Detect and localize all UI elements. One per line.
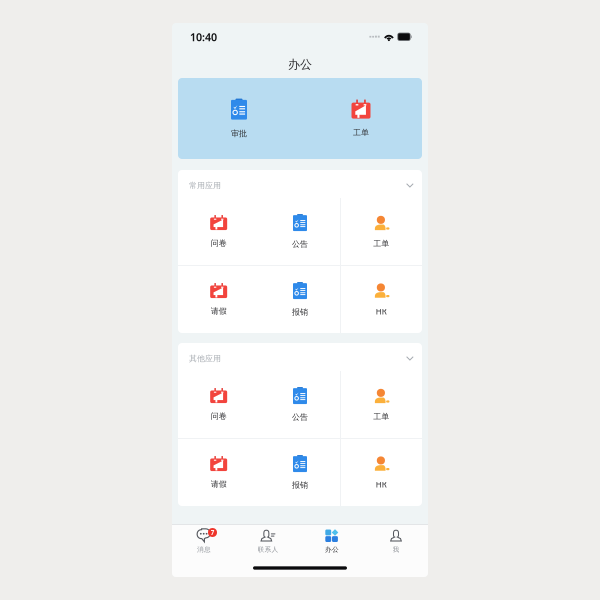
button[interactable]: 请假 xyxy=(178,265,259,333)
staticText: 工单 xyxy=(373,239,389,248)
staticText: 消息 xyxy=(197,545,211,554)
staticText: 工单 xyxy=(373,412,389,421)
button[interactable]: 常用应用 xyxy=(178,170,422,198)
staticText: 7 xyxy=(210,528,214,537)
staticText: 报销 xyxy=(292,480,308,490)
staticText: 我 xyxy=(392,545,399,554)
button[interactable]: 报销 xyxy=(259,438,341,506)
button[interactable]: 办公 xyxy=(300,525,364,559)
button[interactable]: HR xyxy=(341,265,422,333)
button[interactable]: 报销 xyxy=(259,265,341,333)
staticText: HR xyxy=(376,479,387,490)
staticText: 请假 xyxy=(211,479,227,489)
staticText: 办公 xyxy=(288,57,312,72)
staticText: 常用应用 xyxy=(189,181,221,190)
staticText: 公告 xyxy=(292,412,308,422)
button[interactable]: HR xyxy=(341,438,422,506)
button[interactable]: 公告 xyxy=(259,370,341,438)
staticText: 10:40 xyxy=(190,30,217,44)
staticText: 请假 xyxy=(211,306,227,316)
staticText: 公告 xyxy=(292,239,308,249)
button[interactable]: 工单 xyxy=(300,78,422,159)
button[interactable]: 工单 xyxy=(341,197,422,265)
button[interactable]: 我 xyxy=(364,525,428,559)
staticText: 联系人 xyxy=(257,545,278,554)
button[interactable]: 其他应用 xyxy=(178,343,422,371)
staticText: 审批 xyxy=(231,129,247,138)
button[interactable]: 工单 xyxy=(341,370,422,438)
staticText: 报销 xyxy=(292,307,308,317)
button[interactable]: 公告 xyxy=(259,197,341,265)
staticText: 工单 xyxy=(353,128,369,137)
button[interactable]: 7 xyxy=(172,525,236,559)
button[interactable]: 问卷 xyxy=(178,370,259,438)
staticText: HR xyxy=(376,306,387,317)
button[interactable]: 问卷 xyxy=(178,197,259,265)
staticText: 其他应用 xyxy=(189,354,221,363)
staticText: 问卷 xyxy=(211,411,227,421)
button[interactable]: 请假 xyxy=(178,438,259,506)
staticText: 问卷 xyxy=(211,238,227,248)
button[interactable]: 联系人 xyxy=(236,525,300,559)
staticText: 办公 xyxy=(325,545,339,554)
button[interactable]: 审批 xyxy=(178,78,300,159)
